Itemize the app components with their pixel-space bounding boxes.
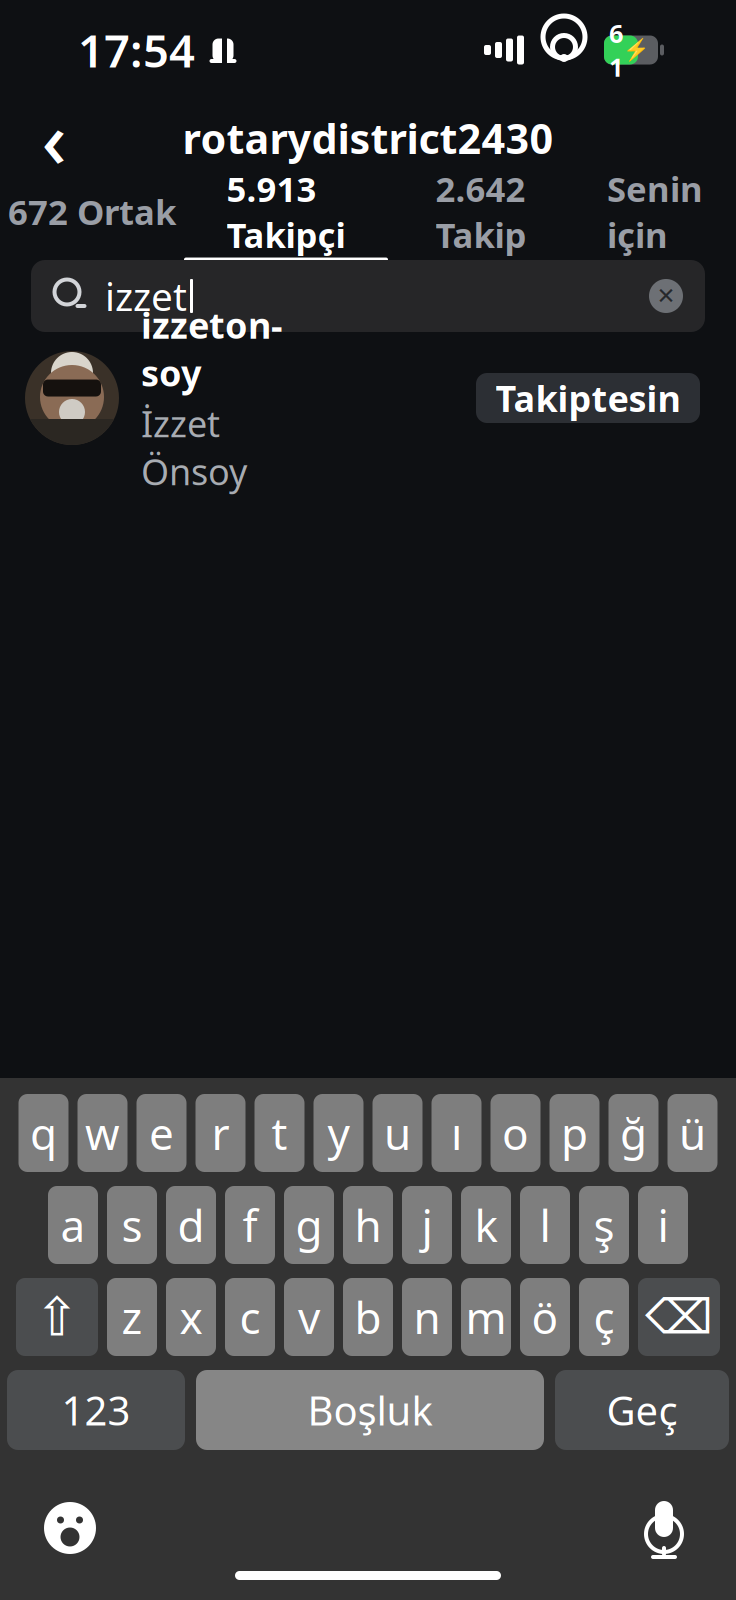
staticText: ‹ [41, 87, 66, 189]
staticText: y [327, 1104, 349, 1162]
button[interactable]: Takiptesin [476, 373, 700, 423]
staticText: t [271, 1104, 287, 1162]
button[interactable]: s [107, 1186, 157, 1264]
staticText: e [149, 1104, 174, 1162]
button[interactable]: i [638, 1186, 688, 1264]
staticText: ı [451, 1104, 462, 1162]
button[interactable]: Senin için [574, 176, 736, 252]
button[interactable]: r [195, 1094, 245, 1172]
staticText: ⌫ [645, 1290, 713, 1344]
staticText: a [60, 1196, 85, 1254]
button[interactable]: ğ [608, 1094, 658, 1172]
staticText: 17:54 [78, 20, 195, 80]
staticText: f [242, 1196, 257, 1254]
staticText: v [298, 1288, 320, 1346]
button[interactable]: n [402, 1278, 452, 1356]
button[interactable]: c [225, 1278, 275, 1356]
button[interactable]: ı [431, 1094, 481, 1172]
staticText: j [421, 1196, 432, 1254]
staticText: q [30, 1104, 57, 1162]
staticText: b [354, 1288, 381, 1346]
staticText: Boşluk [307, 1383, 432, 1436]
button[interactable]: k [461, 1186, 511, 1264]
staticText: 5.913 Takipçi [226, 165, 345, 258]
button[interactable]: izzet [31, 260, 705, 332]
button[interactable]: q [18, 1094, 68, 1172]
staticText: m [465, 1288, 506, 1346]
staticText: rotarydistrict2430 [182, 111, 553, 165]
staticText: izzetonsoy [141, 301, 283, 396]
staticText: x [179, 1288, 202, 1346]
staticText: ş [593, 1196, 614, 1254]
staticText: izzet [105, 270, 187, 322]
button[interactable]: l [520, 1186, 570, 1264]
staticText: Geç [606, 1383, 677, 1436]
staticText: 2.642 Takip [435, 165, 526, 258]
button[interactable]: Emoji keyboard [30, 1488, 110, 1568]
staticText: w [85, 1104, 120, 1162]
staticText: ü [679, 1104, 706, 1162]
staticText: h [354, 1196, 381, 1254]
button[interactable]: o [490, 1094, 540, 1172]
button[interactable]: 123 [7, 1370, 185, 1450]
button[interactable]: f [225, 1186, 275, 1264]
staticText: g [295, 1196, 322, 1254]
staticText: İzzet Önsoy [141, 399, 247, 495]
button[interactable]: b [343, 1278, 393, 1356]
staticText: o [502, 1104, 529, 1162]
staticText: l [539, 1196, 550, 1254]
button[interactable]: w [77, 1094, 127, 1172]
staticText: ⇧ [34, 1287, 79, 1347]
staticText: 672 Ortak [8, 188, 176, 234]
staticText: c [239, 1288, 260, 1346]
staticText: ç [593, 1288, 614, 1346]
staticText: 61 [609, 16, 623, 84]
button[interactable]: a [48, 1186, 98, 1264]
staticText: ⚡ [623, 38, 650, 62]
staticText: ö [531, 1288, 558, 1346]
button[interactable]: Geç [555, 1370, 729, 1450]
staticText: ğ [620, 1104, 647, 1162]
button[interactable]: ş [579, 1186, 629, 1264]
staticText: 123 [61, 1383, 130, 1436]
button[interactable]: 672 Ortak [0, 176, 184, 252]
button[interactable]: t [254, 1094, 304, 1172]
button[interactable]: Back [18, 100, 90, 176]
staticText: Senin için [607, 165, 703, 258]
button[interactable]: 5.913 Takipçi [184, 176, 388, 252]
staticText: r [211, 1104, 229, 1162]
staticText: k [474, 1196, 497, 1254]
button[interactable]: ç [579, 1278, 629, 1356]
button[interactable]: u [372, 1094, 422, 1172]
button[interactable]: ö [520, 1278, 570, 1356]
button[interactable]: Shift [16, 1278, 98, 1356]
button[interactable]: Boşluk [196, 1370, 544, 1450]
button[interactable]: v [284, 1278, 334, 1356]
button[interactable]: e [136, 1094, 186, 1172]
button[interactable]: d [166, 1186, 216, 1264]
button[interactable]: y [313, 1094, 363, 1172]
staticText: ✕ [656, 283, 675, 309]
button[interactable]: 2.642 Takip [388, 176, 574, 252]
staticText: n [413, 1288, 440, 1346]
staticText: p [561, 1104, 588, 1162]
staticText: Takiptesin [495, 374, 680, 422]
staticText: i [657, 1196, 668, 1254]
staticText: s [121, 1196, 142, 1254]
button[interactable]: ü [667, 1094, 717, 1172]
button[interactable]: izzetonsoy [0, 350, 736, 446]
button[interactable]: Dictation [624, 1488, 704, 1568]
button[interactable]: x [166, 1278, 216, 1356]
button[interactable]: Delete [638, 1278, 720, 1356]
button[interactable]: j [402, 1186, 452, 1264]
button[interactable]: m [461, 1278, 511, 1356]
staticText: u [384, 1104, 411, 1162]
button[interactable]: p [549, 1094, 599, 1172]
staticText: d [177, 1196, 204, 1254]
button[interactable]: z [107, 1278, 157, 1356]
staticText: z [121, 1288, 142, 1346]
button[interactable]: g [284, 1186, 334, 1264]
button[interactable]: h [343, 1186, 393, 1264]
